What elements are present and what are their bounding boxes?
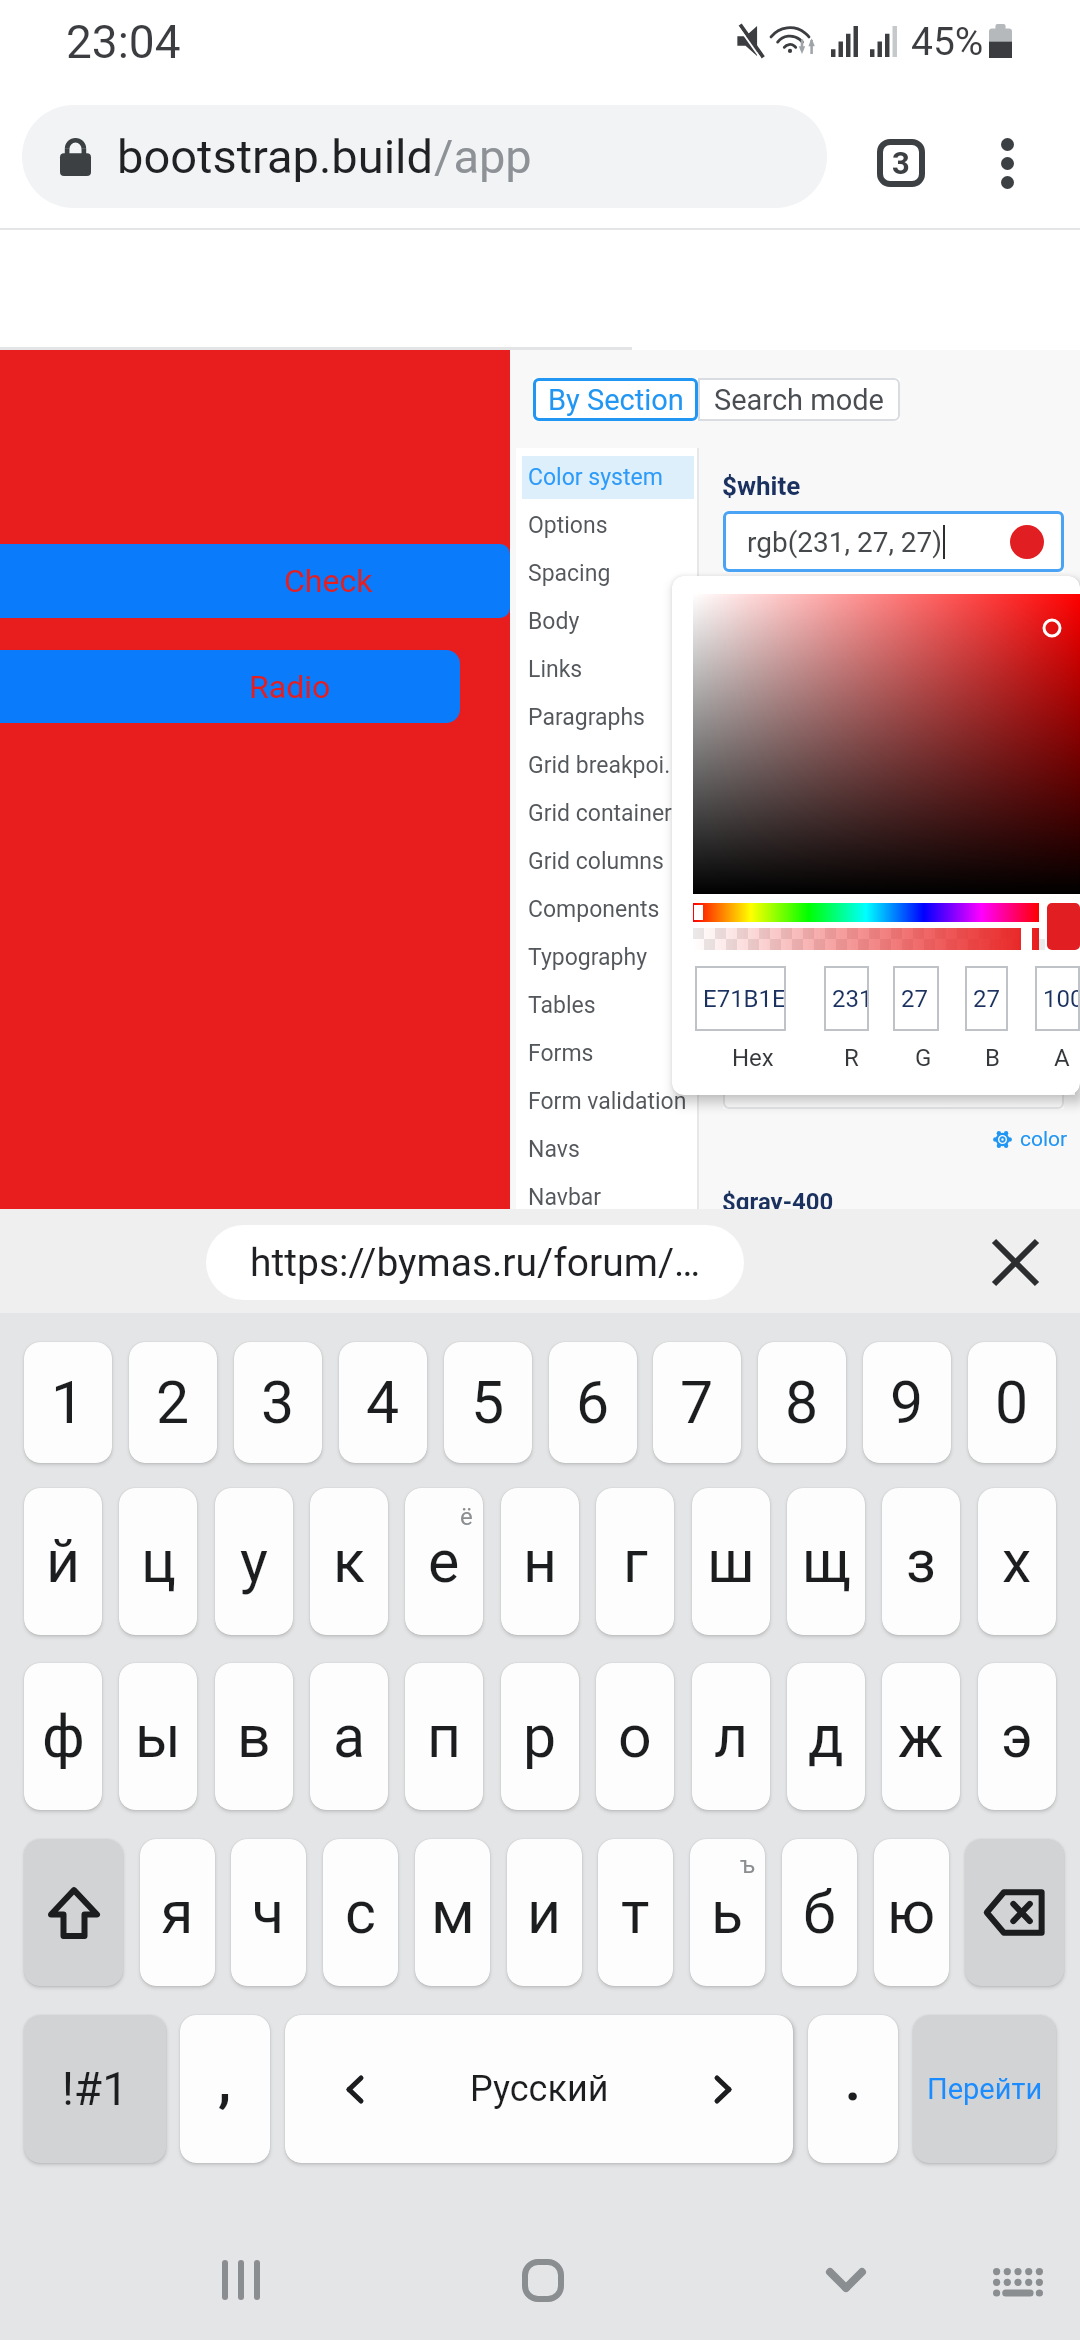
staticText: ф — [42, 1702, 85, 1771]
button[interactable]: ш — [692, 1488, 770, 1635]
button[interactable]: 2 — [129, 1342, 217, 1463]
button[interactable]: Body — [522, 600, 694, 643]
button[interactable]: Options — [522, 504, 694, 547]
button[interactable]: х — [978, 1488, 1056, 1635]
button[interactable]: ь — [690, 1839, 765, 1986]
button[interactable]: bootstrap.build — [22, 105, 827, 208]
button[interactable]: ы — [119, 1663, 197, 1810]
button[interactable]: Tabs — [856, 118, 946, 208]
button[interactable]: б — [782, 1839, 857, 1986]
button[interactable]: э — [978, 1663, 1056, 1810]
button[interactable]: ю — [874, 1839, 949, 1986]
button[interactable]: 8 — [758, 1342, 846, 1463]
button[interactable]: Forms — [522, 1032, 694, 1075]
button[interactable]: ц — [119, 1488, 197, 1635]
button[interactable]: Radio — [0, 650, 460, 723]
button[interactable]: ж — [882, 1663, 960, 1810]
button[interactable]: Grid container — [522, 792, 694, 835]
staticText: A — [1054, 1044, 1070, 1072]
button[interactable]: з — [882, 1488, 960, 1635]
button[interactable]: п — [405, 1663, 483, 1810]
button[interactable]: color — [993, 1127, 1068, 1152]
button[interactable]: 5 — [444, 1342, 532, 1463]
staticText: 231 — [832, 985, 873, 1013]
button[interactable]: Backspace — [965, 1839, 1064, 1986]
button[interactable]: м — [415, 1839, 490, 1986]
button[interactable]: в — [215, 1663, 293, 1810]
staticText: з — [906, 1527, 936, 1596]
button[interactable]: Recents — [181, 2220, 301, 2340]
staticText: ж — [898, 1702, 944, 1771]
button[interactable]: д — [787, 1663, 865, 1810]
staticText: р — [523, 1702, 557, 1771]
button[interactable]: р — [501, 1663, 579, 1810]
button[interactable]: More options — [962, 118, 1052, 208]
button[interactable]: Перейти — [913, 2015, 1056, 2163]
staticText: е — [428, 1527, 460, 1596]
staticText: , — [218, 2050, 232, 2113]
button[interactable]: 0 — [968, 1342, 1056, 1463]
button[interactable]: щ — [787, 1488, 865, 1635]
button[interactable]: 6 — [549, 1342, 637, 1463]
button[interactable]: . — [808, 2015, 898, 2163]
button[interactable]: к — [310, 1488, 388, 1635]
button[interactable]: Search mode — [698, 378, 900, 421]
staticText: Grid container — [528, 800, 672, 827]
button[interactable]: Home — [483, 2220, 603, 2340]
staticText: ё — [460, 1503, 473, 1531]
button[interactable]: о — [596, 1663, 674, 1810]
staticText: Color system — [528, 464, 663, 491]
button[interactable]: rgb(231, 27, 27) — [723, 511, 1064, 572]
staticText: э — [1001, 1702, 1033, 1771]
staticText: ы — [135, 1702, 181, 1771]
button[interactable]: г — [596, 1488, 674, 1635]
button[interactable]: Navbar — [522, 1176, 694, 1209]
button[interactable]: Paragraphs — [522, 696, 694, 739]
button[interactable]: Color system — [522, 456, 694, 499]
button[interactable]: Components — [522, 888, 694, 931]
button[interactable]: Links — [522, 648, 694, 691]
staticText: ъ — [740, 1851, 755, 1879]
staticText: 8 — [785, 1368, 819, 1437]
staticText: щ — [802, 1527, 851, 1596]
button[interactable]: с — [323, 1839, 398, 1986]
button[interactable]: Grid breakpoi. — [522, 744, 694, 787]
button[interactable]: Navs — [522, 1128, 694, 1171]
button[interactable]: т — [598, 1839, 673, 1986]
button[interactable]: й — [24, 1488, 102, 1635]
button[interactable]: Spacing — [522, 552, 694, 595]
button[interactable]: Русский — [285, 2015, 793, 2163]
button[interactable]: ф — [24, 1663, 102, 1810]
button[interactable]: 7 — [653, 1342, 741, 1463]
button[interactable]: https://bymas.ru/forum/… — [206, 1225, 744, 1300]
button[interactable]: Check — [0, 544, 510, 618]
button[interactable]: я — [140, 1839, 215, 1986]
button[interactable]: Grid columns — [522, 840, 694, 883]
button[interactable]: у — [215, 1488, 293, 1635]
staticText: Search mode — [714, 383, 884, 417]
button[interactable]: л — [692, 1663, 770, 1810]
button[interactable]: Form validation — [522, 1080, 694, 1123]
button[interactable]: а — [310, 1663, 388, 1810]
button[interactable]: Tables — [522, 984, 694, 1027]
staticText: 9 — [890, 1368, 924, 1437]
button[interactable]: By Section — [533, 378, 698, 421]
button[interactable]: 4 — [339, 1342, 427, 1463]
button[interactable]: , — [180, 2015, 270, 2163]
button[interactable]: Close — [975, 1222, 1055, 1302]
button[interactable]: н — [501, 1488, 579, 1635]
button[interactable]: и — [507, 1839, 582, 1986]
button[interactable]: 1 — [24, 1342, 112, 1463]
staticText: Options — [528, 512, 608, 539]
staticText: 6 — [576, 1368, 610, 1437]
button[interactable]: Change keyboard — [957, 2222, 1077, 2340]
button[interactable]: Shift — [24, 1839, 123, 1986]
button[interactable]: Hide keyboard — [786, 2220, 906, 2340]
button[interactable]: 3 — [234, 1342, 322, 1463]
button[interactable]: Typography — [522, 936, 694, 979]
button[interactable]: е — [405, 1488, 483, 1635]
staticText: Русский — [470, 2068, 609, 2110]
button[interactable]: 9 — [863, 1342, 951, 1463]
button[interactable]: !#1 — [24, 2015, 166, 2163]
button[interactable]: ч — [231, 1839, 306, 1986]
